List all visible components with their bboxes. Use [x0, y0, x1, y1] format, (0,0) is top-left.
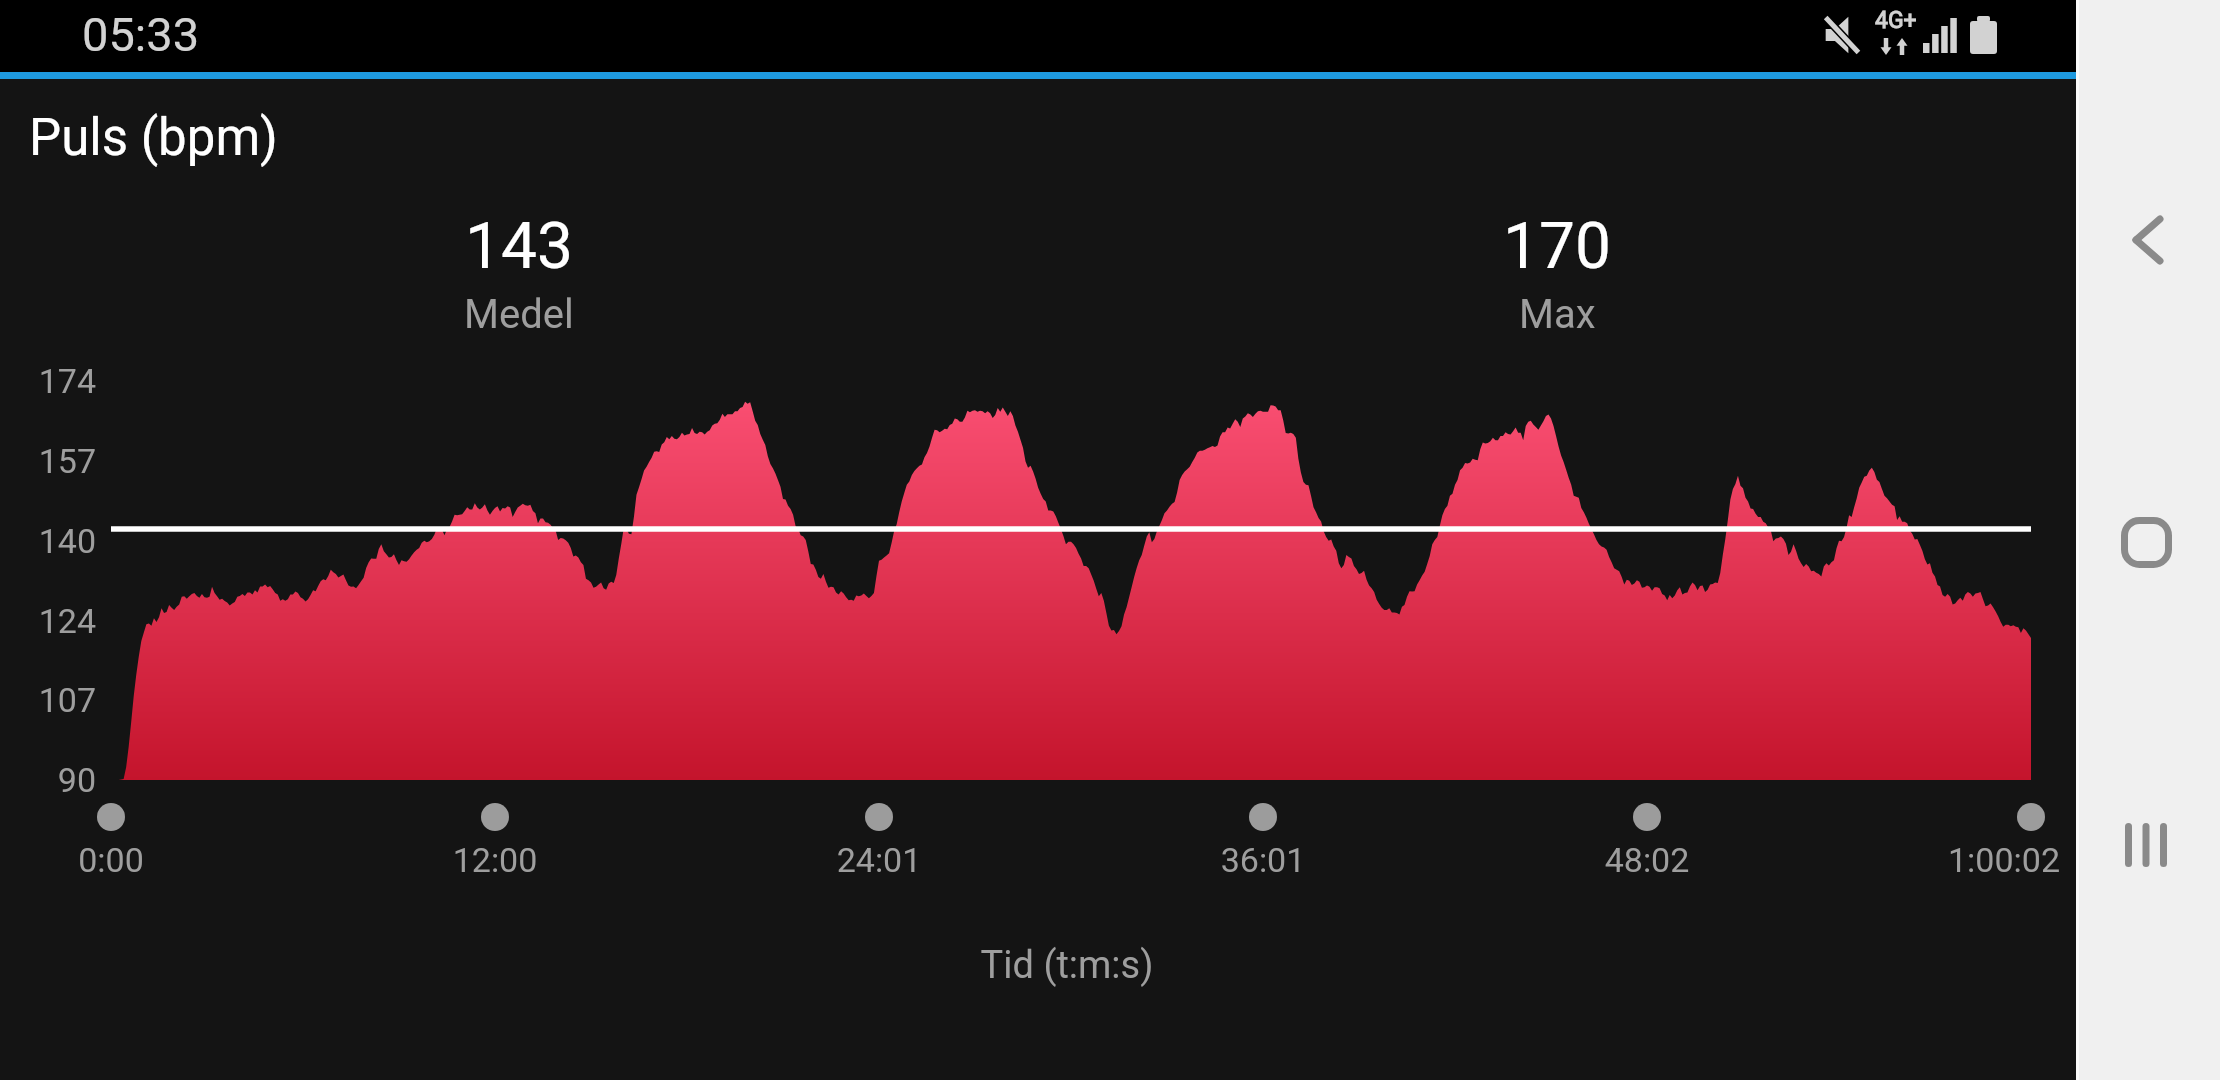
staticText: 1:00:02	[1760, 840, 2060, 880]
staticText: Max	[1519, 291, 1596, 338]
staticText: 4G+	[1875, 7, 1917, 34]
staticText: Puls (bpm)	[29, 108, 278, 168]
staticText: 170	[1503, 209, 1611, 284]
staticText: 05:33	[82, 7, 200, 62]
staticText: 143	[465, 209, 573, 284]
button[interactable]: Heart rate chart	[0, 360, 2076, 880]
staticText: 12:00	[345, 840, 645, 880]
staticText: 140	[0, 521, 96, 561]
staticText: 48:02	[1497, 840, 1797, 880]
button[interactable]: Recent apps	[2081, 780, 2211, 910]
staticText: 0:00	[0, 840, 261, 880]
staticText: Tid (t:m:s)	[917, 943, 1217, 988]
staticText: 157	[0, 441, 96, 481]
staticText: 24:01	[729, 840, 1029, 880]
staticText: 90	[0, 760, 96, 800]
button[interactable]: Home	[2081, 477, 2211, 607]
staticText: Medel	[464, 291, 574, 338]
button[interactable]: Back	[2083, 175, 2213, 305]
staticText: 107	[0, 680, 96, 720]
staticText: 174	[0, 361, 96, 401]
staticText: 36:01	[1113, 840, 1413, 880]
staticText: 124	[0, 601, 96, 641]
